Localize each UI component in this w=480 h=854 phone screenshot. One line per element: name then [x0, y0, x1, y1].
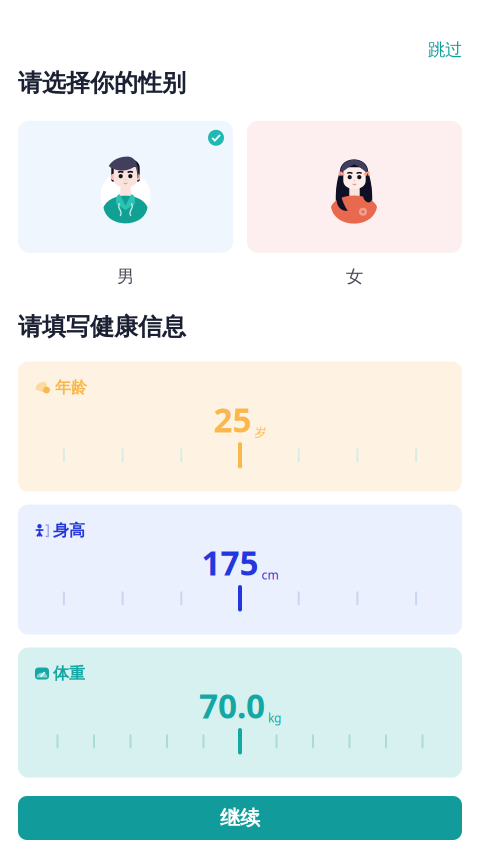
staticText: 175 — [201, 540, 258, 585]
staticText: 年龄 — [55, 378, 87, 397]
staticText: 请填写健康信息 — [18, 312, 186, 342]
button[interactable]: 继续 — [18, 796, 462, 840]
staticText: 请选择你的性别 — [18, 68, 186, 98]
staticText: 岁 — [254, 425, 266, 440]
staticText: 继续 — [220, 806, 260, 830]
staticText: 体重 — [53, 664, 85, 683]
staticText: 女 — [346, 266, 363, 287]
staticText: 70.0 — [199, 683, 265, 728]
button[interactable]: 跳过 — [423, 35, 467, 64]
staticText: cm — [261, 567, 278, 583]
staticText: 跳过 — [428, 39, 462, 60]
staticText: kg — [268, 710, 281, 726]
staticText: 身高 — [53, 521, 85, 540]
staticText: 男 — [117, 266, 134, 287]
staticText: 25 — [213, 397, 251, 442]
button[interactable]: 女 — [247, 121, 462, 287]
button[interactable]: 男 — [18, 121, 233, 287]
